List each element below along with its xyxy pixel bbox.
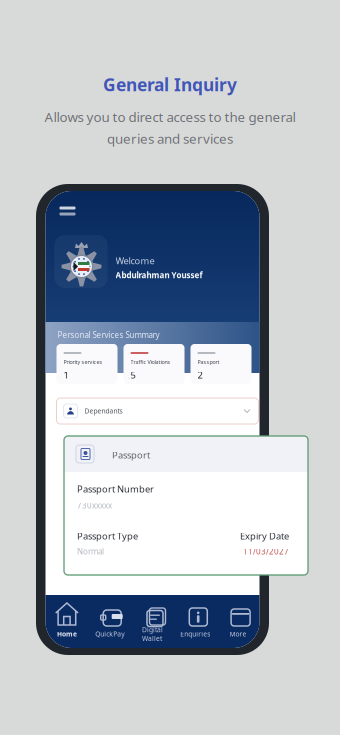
button[interactable]: Digital Wallet (131, 595, 174, 648)
staticText: Expiry Date (240, 530, 289, 542)
button[interactable]: Passport (190, 344, 251, 384)
button[interactable]: Menu (54, 201, 80, 221)
button[interactable]: Traffic Violations (123, 344, 184, 384)
button[interactable]: QuickPay (88, 595, 131, 648)
staticText: QuickPay (95, 630, 124, 638)
staticText: Dependants (84, 407, 122, 415)
staticText: More (230, 630, 247, 638)
staticText: Abdulrahman Youssef (115, 270, 202, 280)
staticText: Passport Number (77, 483, 154, 495)
staticText: Welcome (115, 254, 154, 267)
staticText: Traffic Violations (130, 358, 170, 366)
button[interactable]: Enquiries (174, 595, 217, 648)
staticText: Home (57, 630, 77, 638)
staticText: 5 (130, 369, 135, 381)
staticText: General Inquiry (103, 73, 237, 96)
button[interactable]: More (217, 595, 259, 648)
staticText: Passport (197, 358, 219, 366)
button[interactable]: Priority services (56, 344, 117, 384)
staticText: Personal Services Summary (57, 330, 159, 340)
button[interactable]: Dependants (56, 398, 258, 424)
staticText: 2 (197, 369, 202, 381)
button[interactable]: Home (45, 595, 88, 648)
staticText: 1 (63, 369, 68, 381)
staticText: Passport (112, 449, 150, 461)
staticText: Enquiries (180, 630, 210, 638)
staticText: queries and services (107, 130, 233, 147)
staticText: Allows you to direct access to the gener… (44, 108, 295, 126)
staticText: Normal (77, 546, 104, 557)
staticText: 11/03/2027 (243, 546, 289, 557)
staticText: 730xxxxx (77, 500, 112, 511)
staticText: Passport Type (77, 530, 138, 542)
staticText: Priority services (63, 358, 102, 366)
staticText: Digital Wallet (142, 625, 163, 643)
